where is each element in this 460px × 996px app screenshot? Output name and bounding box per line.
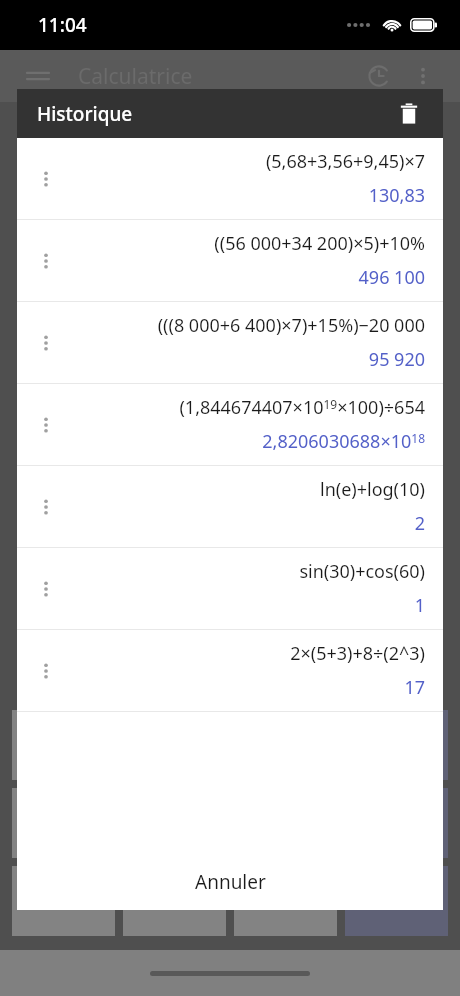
button[interactable]: Key: [12, 866, 115, 936]
staticText: 130,83: [368, 183, 425, 208]
button[interactable]: Menu: [20, 58, 56, 94]
staticText: (((8 000+6 400)×7)+15%)−20 000: [157, 313, 425, 338]
button[interactable]: More options: [406, 59, 440, 93]
staticText: 2×(5+3)+8÷(2^3): [290, 641, 425, 666]
button[interactable]: Annuler: [22, 857, 438, 907]
button[interactable]: Key: [12, 788, 115, 858]
button[interactable]: Key: [12, 710, 115, 780]
button[interactable]: Item options: [31, 492, 61, 522]
staticText: sin(30)+cos(60): [299, 559, 425, 584]
button[interactable]: Key: [123, 866, 226, 936]
staticText: 1: [414, 593, 425, 618]
staticText: 2: [414, 511, 425, 536]
button[interactable]: Key: [345, 788, 448, 858]
staticText: Annuler: [195, 869, 266, 895]
staticText: ((56 000+34 200)×5)+10%: [214, 231, 425, 256]
staticText: Historique: [37, 101, 133, 127]
button[interactable]: History: [360, 57, 398, 95]
staticText: (1,844674407×1019×100)÷654: [179, 395, 425, 420]
button[interactable]: Item options: [17, 220, 443, 301]
button[interactable]: Item options: [31, 656, 61, 686]
button[interactable]: Key: [345, 866, 448, 936]
button[interactable]: Delete history: [389, 94, 429, 134]
button[interactable]: Key: [345, 710, 448, 780]
button[interactable]: Item options: [31, 328, 61, 358]
staticText: (5,68+3,56+9,45)×7: [265, 149, 425, 174]
button[interactable]: Item options: [17, 630, 443, 711]
staticText: 95 920: [368, 347, 425, 372]
button[interactable]: Item options: [31, 246, 61, 276]
staticText: 17: [404, 675, 425, 700]
button[interactable]: Item options: [17, 384, 443, 465]
button[interactable]: Item options: [17, 466, 443, 547]
button[interactable]: Item options: [17, 138, 443, 219]
staticText: 2,8206030688×1018: [262, 429, 425, 454]
button[interactable]: Item options: [31, 410, 61, 440]
staticText: ln(e)+log(10): [319, 477, 425, 502]
button[interactable]: Key: [234, 866, 337, 936]
button[interactable]: Item options: [17, 548, 443, 629]
button[interactable]: Item options: [17, 302, 443, 383]
button[interactable]: Item options: [31, 574, 61, 604]
button[interactable]: Item options: [31, 164, 61, 194]
staticText: 11:04: [38, 12, 87, 38]
staticText: 496 100: [358, 265, 425, 290]
staticText: Calculatrice: [78, 62, 193, 91]
